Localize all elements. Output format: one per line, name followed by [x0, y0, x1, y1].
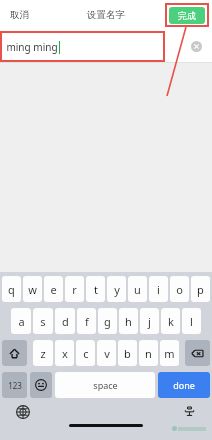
- button[interactable]: Shift: [2, 340, 27, 366]
- staticText: u: [134, 282, 141, 297]
- button[interactable]: m: [160, 340, 179, 366]
- button[interactable]: c: [76, 340, 95, 366]
- staticText: n: [145, 346, 152, 361]
- button[interactable]: v: [97, 340, 116, 366]
- staticText: i: [157, 282, 160, 297]
- staticText: y: [114, 282, 120, 297]
- staticText: b: [124, 346, 131, 361]
- staticText: e: [50, 282, 57, 297]
- button[interactable]: y: [107, 276, 126, 302]
- button[interactable]: 完成: [169, 7, 205, 24]
- staticText: x: [62, 346, 68, 361]
- button[interactable]: z: [33, 340, 53, 366]
- button[interactable]: k: [161, 308, 180, 334]
- button[interactable]: space: [55, 372, 155, 398]
- staticText: m: [164, 346, 175, 361]
- staticText: ming ming: [6, 40, 58, 54]
- staticText: h: [125, 314, 132, 329]
- button[interactable]: u: [128, 276, 147, 302]
- staticText: 设置名字: [87, 9, 125, 21]
- staticText: 123: [8, 380, 22, 391]
- button[interactable]: Dictation: [183, 404, 196, 417]
- staticText: space: [93, 379, 118, 391]
- button[interactable]: w: [23, 276, 42, 302]
- staticText: t: [94, 282, 98, 297]
- staticText: 完成: [178, 10, 196, 21]
- staticText: f: [85, 314, 89, 329]
- button[interactable]: done: [158, 372, 210, 398]
- button[interactable]: n: [139, 340, 158, 366]
- staticText: g: [104, 314, 111, 329]
- button[interactable]: i: [149, 276, 168, 302]
- button[interactable]: Change keyboard language: [16, 405, 30, 419]
- staticText: 取消: [10, 9, 29, 21]
- staticText: w: [28, 282, 37, 297]
- button[interactable]: 123: [2, 372, 27, 398]
- staticText: a: [18, 314, 25, 329]
- button[interactable]: d: [55, 308, 75, 334]
- button[interactable]: Backspace: [185, 340, 210, 366]
- staticText: j: [148, 314, 151, 329]
- staticText: z: [40, 346, 46, 361]
- button[interactable]: r: [65, 276, 84, 302]
- button[interactable]: ming ming: [0, 31, 165, 62]
- button[interactable]: a: [11, 308, 31, 334]
- button[interactable]: o: [170, 276, 189, 302]
- button[interactable]: e: [44, 276, 63, 302]
- staticText: o: [176, 282, 183, 297]
- button[interactable]: t: [86, 276, 105, 302]
- staticText: s: [40, 314, 46, 329]
- button[interactable]: Clear text: [191, 41, 202, 52]
- staticText: k: [168, 314, 174, 329]
- button[interactable]: h: [119, 308, 138, 334]
- button[interactable]: p: [191, 276, 210, 302]
- staticText: r: [72, 282, 77, 297]
- button[interactable]: s: [33, 308, 53, 334]
- staticText: q: [8, 282, 15, 297]
- staticText: c: [83, 346, 89, 361]
- button[interactable]: j: [140, 308, 159, 334]
- staticText: v: [104, 346, 110, 361]
- staticText: done: [173, 379, 195, 391]
- button[interactable]: x: [55, 340, 74, 366]
- staticText: l: [190, 314, 193, 329]
- button[interactable]: f: [77, 308, 96, 334]
- button[interactable]: g: [98, 308, 117, 334]
- button[interactable]: 取消: [4, 5, 35, 25]
- button[interactable]: Emoji: [30, 372, 52, 398]
- button[interactable]: q: [2, 276, 21, 302]
- staticText: d: [62, 314, 69, 329]
- button[interactable]: b: [118, 340, 137, 366]
- staticText: p: [197, 282, 204, 297]
- button[interactable]: l: [182, 308, 201, 334]
